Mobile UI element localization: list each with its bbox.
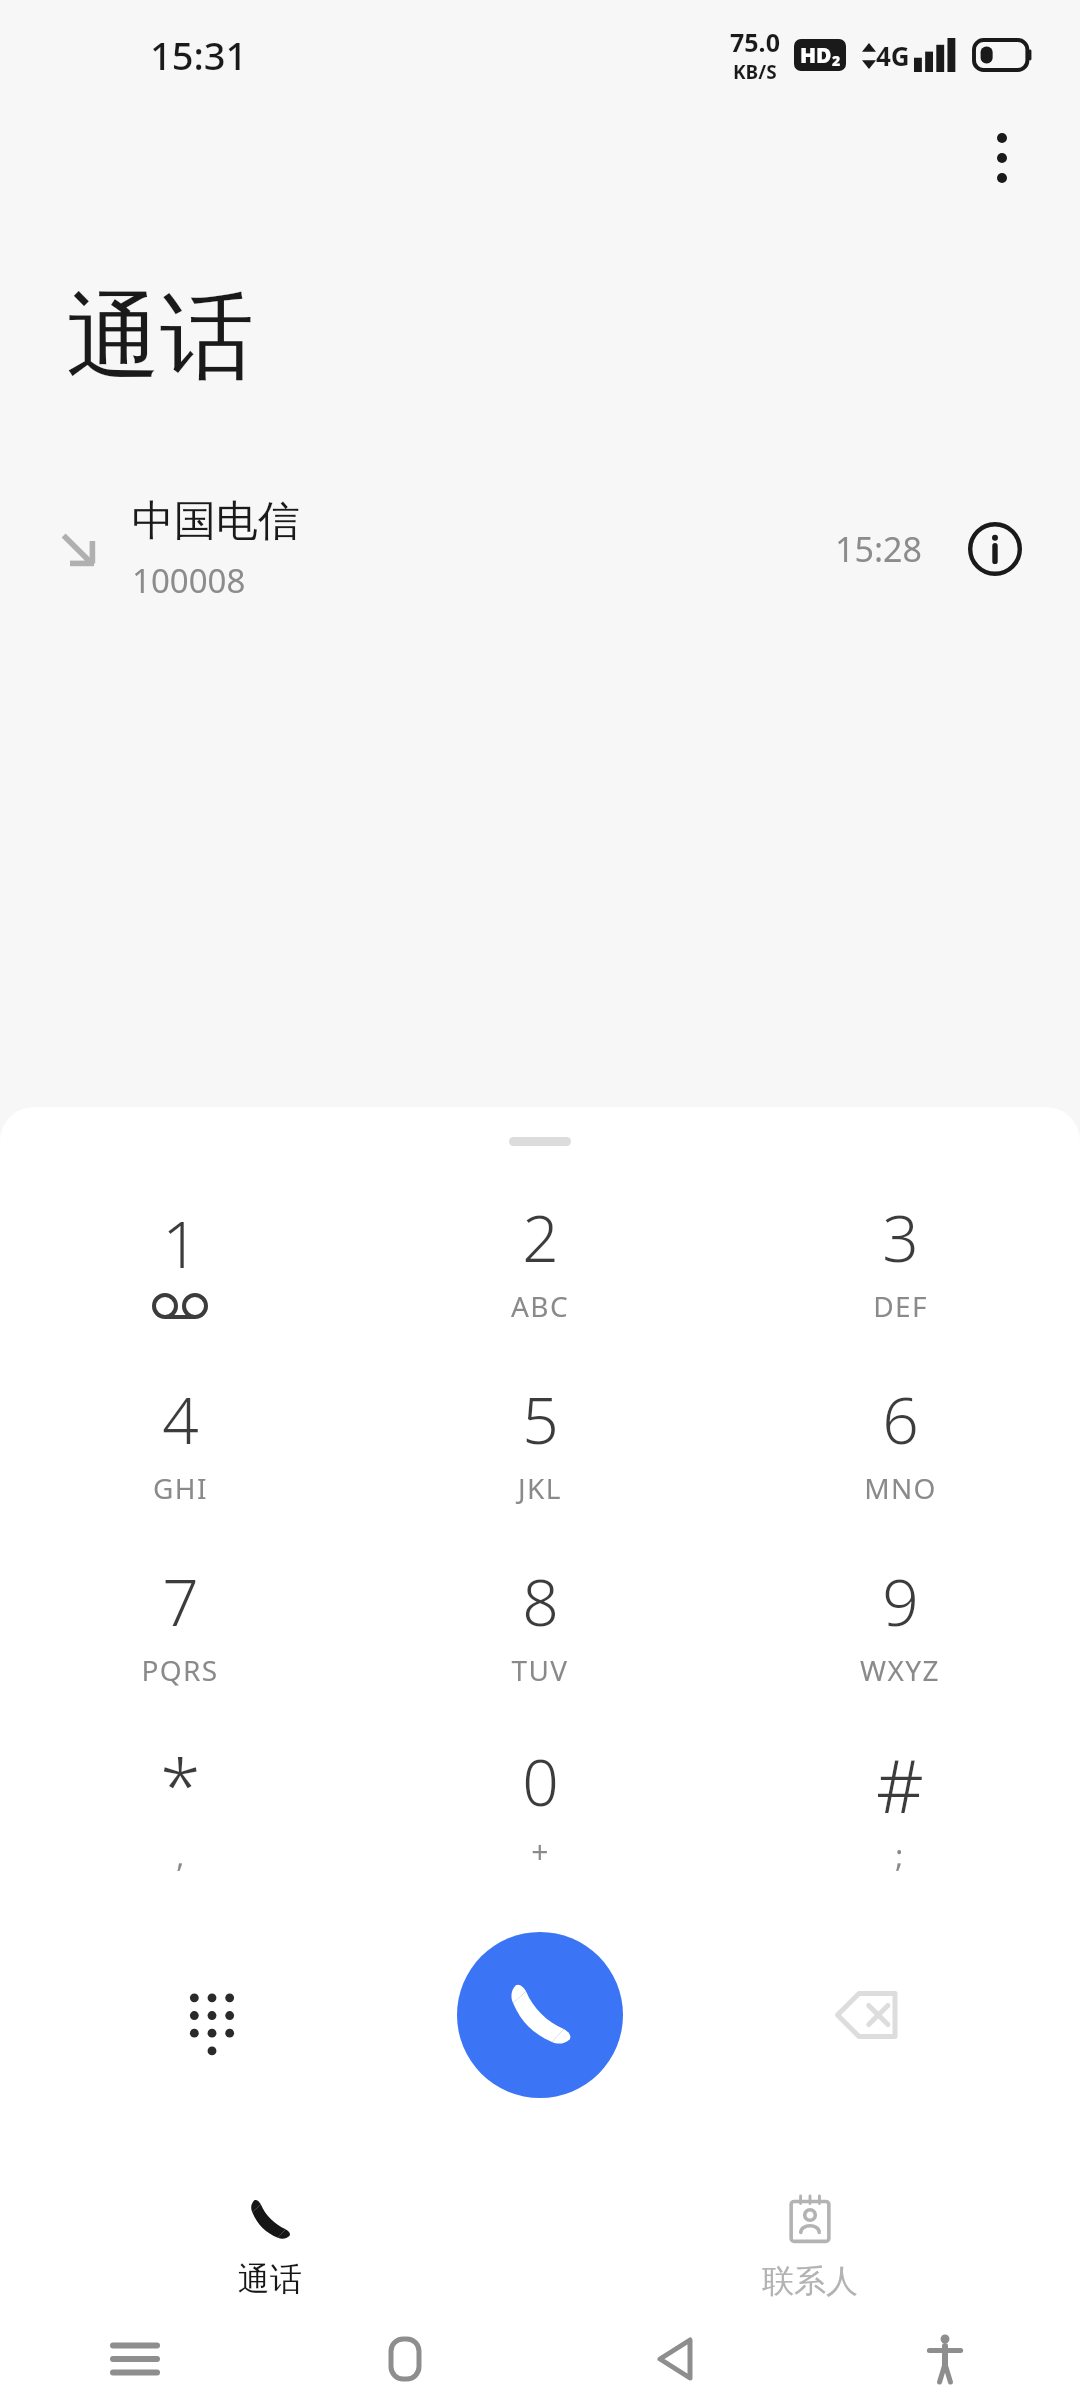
staticText: KB/S	[733, 59, 777, 85]
button[interactable]: 4	[0, 1350, 360, 1532]
staticText: ,	[176, 1835, 186, 1876]
staticText: 15:28	[835, 526, 922, 572]
staticText: *	[160, 1734, 201, 1835]
staticText: 4	[162, 1376, 199, 1463]
button[interactable]: 2	[360, 1168, 720, 1350]
button[interactable]: 7	[0, 1532, 360, 1714]
button[interactable]: Recent apps	[0, 2318, 270, 2400]
button[interactable]: Call	[457, 1932, 623, 2098]
staticText: GHI	[153, 1469, 208, 1507]
staticText: 7	[162, 1558, 199, 1645]
staticText: 8	[522, 1558, 559, 1645]
button[interactable]: Accessibility	[810, 2318, 1080, 2400]
staticText: 3	[882, 1194, 919, 1281]
staticText: HD	[800, 41, 832, 70]
button[interactable]: Back	[540, 2318, 810, 2400]
button[interactable]: 3	[720, 1168, 1080, 1350]
staticText: 2	[522, 1194, 559, 1281]
button[interactable]: 联系人	[540, 2178, 1080, 2318]
staticText: ;	[895, 1835, 905, 1876]
staticText: TUV	[511, 1651, 569, 1689]
staticText: #	[876, 1734, 924, 1835]
button[interactable]: Call details	[958, 512, 1032, 586]
staticText: 15:31	[150, 29, 248, 81]
staticText: 100008	[132, 558, 246, 603]
staticText: 通话	[66, 278, 254, 396]
staticText: 1	[162, 1200, 199, 1287]
button[interactable]: 中国电信	[0, 474, 1080, 624]
staticText: 联系人	[762, 2261, 858, 2301]
button[interactable]: 6	[720, 1350, 1080, 1532]
staticText: DEF	[873, 1287, 928, 1325]
staticText: 中国电信	[132, 495, 300, 548]
staticText: +	[531, 1831, 550, 1872]
button[interactable]: 通话	[0, 2178, 540, 2318]
staticText: 9	[882, 1558, 919, 1645]
staticText: WXYZ	[860, 1651, 940, 1689]
staticText: 通话	[238, 2259, 302, 2299]
staticText: 75.0	[730, 25, 780, 59]
button[interactable]: #	[720, 1714, 1080, 1896]
button[interactable]: More options	[954, 110, 1050, 206]
staticText: 5	[522, 1376, 559, 1463]
staticText: 0	[522, 1738, 559, 1825]
button[interactable]: 9	[720, 1532, 1080, 1714]
staticText: MNO	[864, 1469, 937, 1507]
staticText: ABC	[511, 1287, 569, 1325]
button[interactable]: 5	[360, 1350, 720, 1532]
button[interactable]: 8	[360, 1532, 720, 1714]
staticText: 4G	[876, 38, 910, 73]
staticText: JKL	[518, 1469, 562, 1507]
button[interactable]: Keypad	[158, 1961, 266, 2069]
staticText: 6	[882, 1376, 919, 1463]
button[interactable]: Home	[270, 2318, 540, 2400]
button[interactable]: *	[0, 1714, 360, 1896]
button[interactable]: 0	[360, 1714, 720, 1896]
button[interactable]: 1	[0, 1168, 360, 1350]
button[interactable]: Backspace	[814, 1961, 922, 2069]
staticText: 2	[832, 51, 841, 70]
staticText: PQRS	[141, 1651, 219, 1689]
